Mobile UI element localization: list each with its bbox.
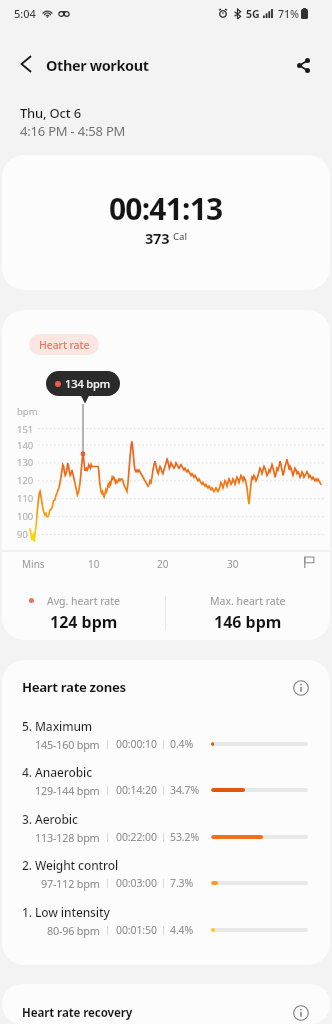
staticText: 00:22:00 [116,830,157,844]
staticText: 20 [157,557,169,571]
button[interactable]: 1. Low intensity [2,903,330,945]
button[interactable]: Share [280,36,332,88]
staticText: Heart rate [39,338,90,352]
staticText: 5G [246,7,260,21]
staticText: 00:41:13 [109,188,223,224]
staticText: Heart rate zones [22,678,126,696]
button[interactable]: 3. Aerobic [2,810,330,852]
staticText: Thu, Oct 6 [20,104,81,122]
staticText: 129-144 bpm [35,783,100,798]
button[interactable]: Information [289,1001,313,1024]
staticText: 100 [17,510,34,523]
staticText: Max. heart rate [210,594,286,608]
button[interactable]: Back [0,36,46,88]
staticText: 97-112 bpm [41,876,100,891]
staticText: 130 [17,456,34,469]
staticText: 120 [17,474,34,487]
staticText: 113-128 bpm [35,830,100,845]
staticText: Mins [22,557,45,571]
staticText: Other workout [46,55,149,75]
button[interactable]: Heart rate [29,334,99,355]
staticText: 10 [88,557,100,571]
staticText: 151 [17,423,34,436]
staticText: Heart rate recovery [22,1005,133,1021]
staticText: 00:03:00 [116,876,157,890]
staticText: Avg. heart rate [47,594,120,608]
staticText: 0.4% [170,737,194,751]
staticText: 134 bpm [65,376,111,391]
staticText: 71% [278,7,299,21]
staticText: 90 [17,528,28,541]
staticText: 140 [17,439,34,452]
staticText: 00:01:50 [116,923,157,937]
staticText: 30 [227,557,239,571]
staticText: bpm [17,405,38,418]
staticText: 2. Weight control [22,857,119,873]
button[interactable]: 2. Weight control [2,856,330,898]
staticText: 146 bpm [214,611,282,633]
staticText: 00:14:20 [116,783,157,797]
staticText: 5:04 [14,6,36,21]
staticText: Cal [173,230,188,243]
staticText: 4.4% [170,923,194,937]
staticText: 7.3% [170,876,194,890]
staticText: 145-160 bpm [35,737,100,752]
staticText: 3. Aerobic [22,811,78,827]
button[interactable]: 4. Anaerobic [2,763,330,805]
button[interactable]: 5. Maximum [2,717,330,759]
staticText: 4:16 PM - 4:58 PM [20,122,126,140]
staticText: 124 bpm [50,611,118,633]
staticText: 34.7% [170,783,200,797]
staticText: 110 [17,492,34,505]
staticText: 373 [145,228,170,244]
staticText: 1. Low intensity [22,904,110,920]
staticText: 4. Anaerobic [22,764,92,780]
staticText: 00:00:10 [116,737,157,751]
staticText: 5. Maximum [22,718,93,734]
staticText: 53.2% [170,830,200,844]
staticText: 80-96 bpm [47,923,100,938]
button[interactable]: Information [289,676,313,700]
